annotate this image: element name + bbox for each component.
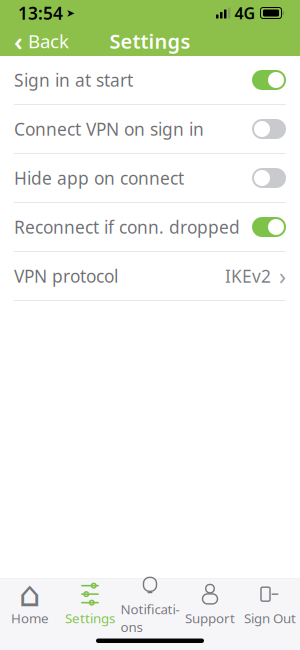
staticText: › xyxy=(279,261,286,291)
staticText: Settings xyxy=(109,28,190,54)
staticText: VPN protocol xyxy=(14,264,118,287)
staticText: IKEv2 xyxy=(225,264,271,287)
button[interactable]: Hide app on connect xyxy=(0,154,300,202)
button[interactable]: › xyxy=(240,582,300,628)
staticText: Home xyxy=(11,609,49,627)
staticText: ➤ xyxy=(66,7,75,19)
staticText: Reconnect if conn. dropped xyxy=(14,215,240,238)
staticText: Notifications xyxy=(120,600,179,636)
button[interactable]: Connect VPN on sign in xyxy=(0,105,300,153)
button[interactable]: Notifications xyxy=(120,582,180,628)
staticText: Hide app on connect xyxy=(14,166,184,189)
staticText: Sign Out xyxy=(244,609,296,627)
staticText: Connect VPN on sign in xyxy=(14,117,204,140)
staticText: Settings xyxy=(65,609,115,627)
staticText: Sign in at start xyxy=(14,68,133,91)
button[interactable]: Support xyxy=(180,582,240,628)
button[interactable]: ‹ xyxy=(0,25,83,57)
button[interactable]: ⌂ xyxy=(0,582,60,628)
staticText: 13:54 xyxy=(18,1,63,24)
button[interactable]: Reconnect if conn. dropped xyxy=(0,203,300,251)
staticText: Back xyxy=(28,29,69,53)
button[interactable]: Settings xyxy=(60,582,120,628)
staticText: ‹ xyxy=(14,24,23,58)
staticText: 4G xyxy=(234,2,255,24)
button[interactable]: VPN protocol xyxy=(0,252,300,300)
staticText: Support xyxy=(185,609,235,627)
button[interactable]: Sign in at start xyxy=(0,56,300,104)
staticText: ⌂ xyxy=(19,574,41,614)
